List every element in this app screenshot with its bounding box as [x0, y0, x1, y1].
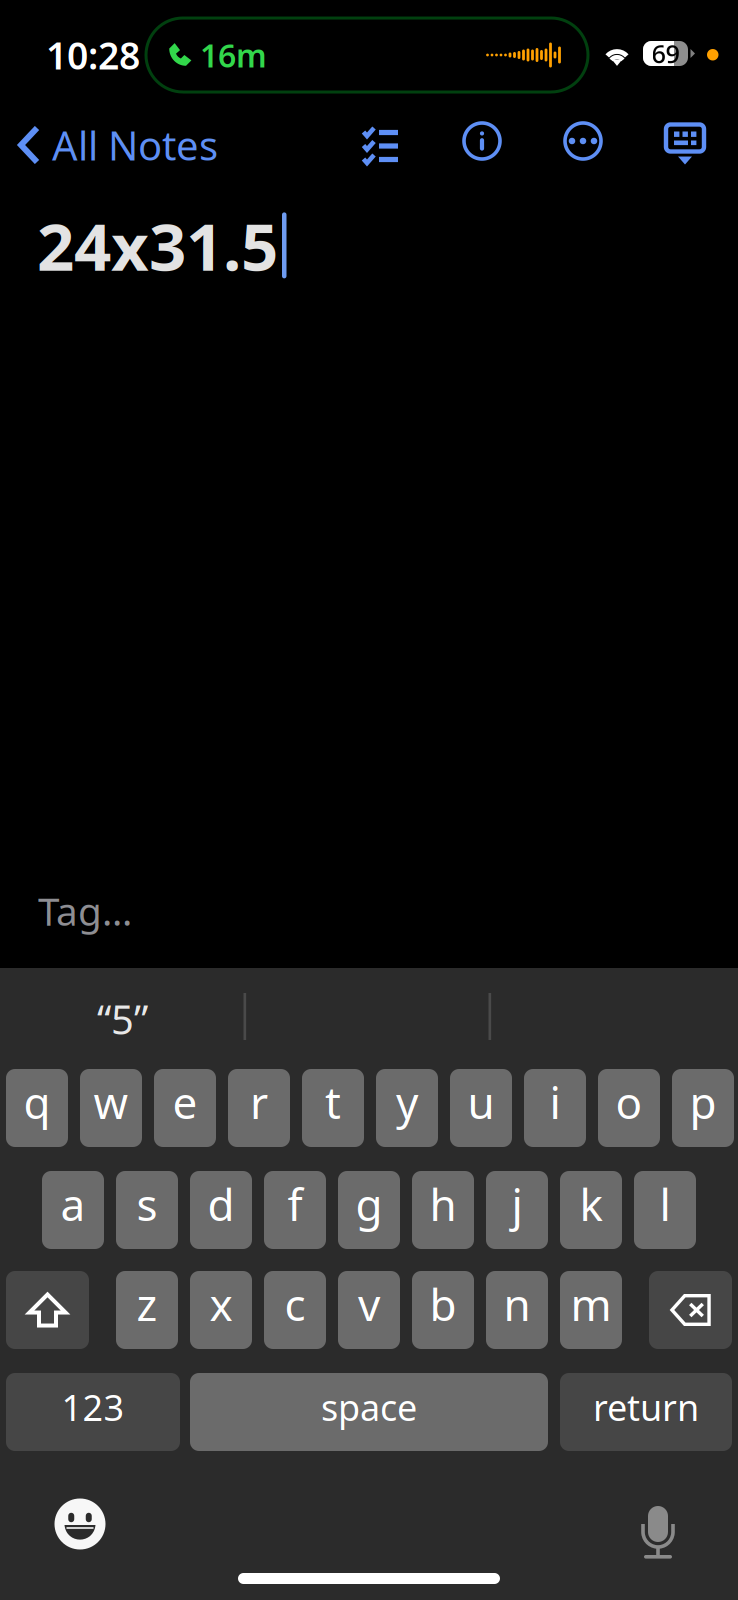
button[interactable]: w [80, 1069, 142, 1147]
button[interactable]: x [190, 1271, 252, 1349]
staticText: k [579, 1175, 602, 1233]
staticText: 69 [651, 37, 679, 70]
staticText: return [593, 1383, 699, 1431]
staticText: n [503, 1275, 530, 1333]
button[interactable]: Delete [649, 1271, 732, 1349]
staticText: e [172, 1073, 197, 1131]
button[interactable]: Info [451, 110, 513, 172]
staticText: space [321, 1383, 417, 1431]
button[interactable]: Dictation [622, 1488, 694, 1560]
staticText: 10:28 [46, 30, 140, 80]
button[interactable]: Checklist [349, 111, 411, 173]
button[interactable]: return [560, 1373, 732, 1451]
staticText: b [429, 1275, 456, 1333]
staticText: d [207, 1175, 234, 1233]
button[interactable]: q [6, 1069, 68, 1147]
staticText: m [570, 1275, 611, 1333]
button[interactable]: All Notes [2, 112, 232, 178]
button[interactable]: i [524, 1069, 586, 1147]
button[interactable]: n [486, 1271, 548, 1349]
button[interactable]: g [338, 1171, 400, 1249]
staticText: a [60, 1175, 85, 1233]
staticText: g [355, 1175, 382, 1233]
button[interactable]: z [116, 1271, 178, 1349]
staticText: “5” [97, 992, 148, 1045]
staticText: w [93, 1073, 128, 1131]
staticText: r [250, 1073, 268, 1131]
staticText: u [467, 1073, 494, 1131]
staticText: q [23, 1073, 50, 1131]
staticText: All Notes [52, 118, 218, 171]
button[interactable]: u [450, 1069, 512, 1147]
staticText: f [287, 1175, 302, 1233]
button[interactable]: y [376, 1069, 438, 1147]
button[interactable]: l [634, 1171, 696, 1249]
button[interactable]: k [560, 1171, 622, 1249]
button[interactable]: e [154, 1069, 216, 1147]
button[interactable]: t [302, 1069, 364, 1147]
button[interactable]: m [560, 1271, 622, 1349]
button[interactable]: space [190, 1373, 548, 1451]
staticText: h [429, 1175, 456, 1233]
button[interactable]: s [116, 1171, 178, 1249]
button[interactable]: d [190, 1171, 252, 1249]
button[interactable]: r [228, 1069, 290, 1147]
button[interactable]: c [264, 1271, 326, 1349]
staticText: j [511, 1175, 522, 1233]
button[interactable]: 123 [6, 1373, 180, 1451]
button[interactable]: More options [552, 110, 614, 172]
button[interactable]: b [412, 1271, 474, 1349]
button[interactable]: a [42, 1171, 104, 1249]
button[interactable]: Emoji [44, 1488, 116, 1560]
staticText: y [396, 1073, 418, 1131]
staticText: 123 [61, 1383, 124, 1431]
staticText: s [136, 1175, 157, 1233]
staticText: Tag... [38, 885, 132, 936]
staticText: z [136, 1275, 157, 1333]
button[interactable]: Shift [6, 1271, 89, 1349]
staticText: c [284, 1275, 305, 1333]
staticText: p [689, 1073, 716, 1131]
button[interactable]: p [672, 1069, 734, 1147]
button[interactable]: Hide Keyboard [654, 107, 716, 169]
button[interactable]: v [338, 1271, 400, 1349]
button[interactable]: j [486, 1171, 548, 1249]
staticText: l [659, 1175, 670, 1233]
staticText: x [209, 1275, 232, 1333]
staticText: 24x31.5 [37, 202, 278, 289]
button[interactable]: f [264, 1171, 326, 1249]
staticText: t [325, 1073, 341, 1131]
button[interactable]: o [598, 1069, 660, 1147]
button[interactable]: h [412, 1171, 474, 1249]
staticText: 16m [200, 34, 267, 76]
staticText: v [358, 1275, 380, 1333]
staticText: o [615, 1073, 642, 1131]
staticText: i [549, 1073, 560, 1131]
